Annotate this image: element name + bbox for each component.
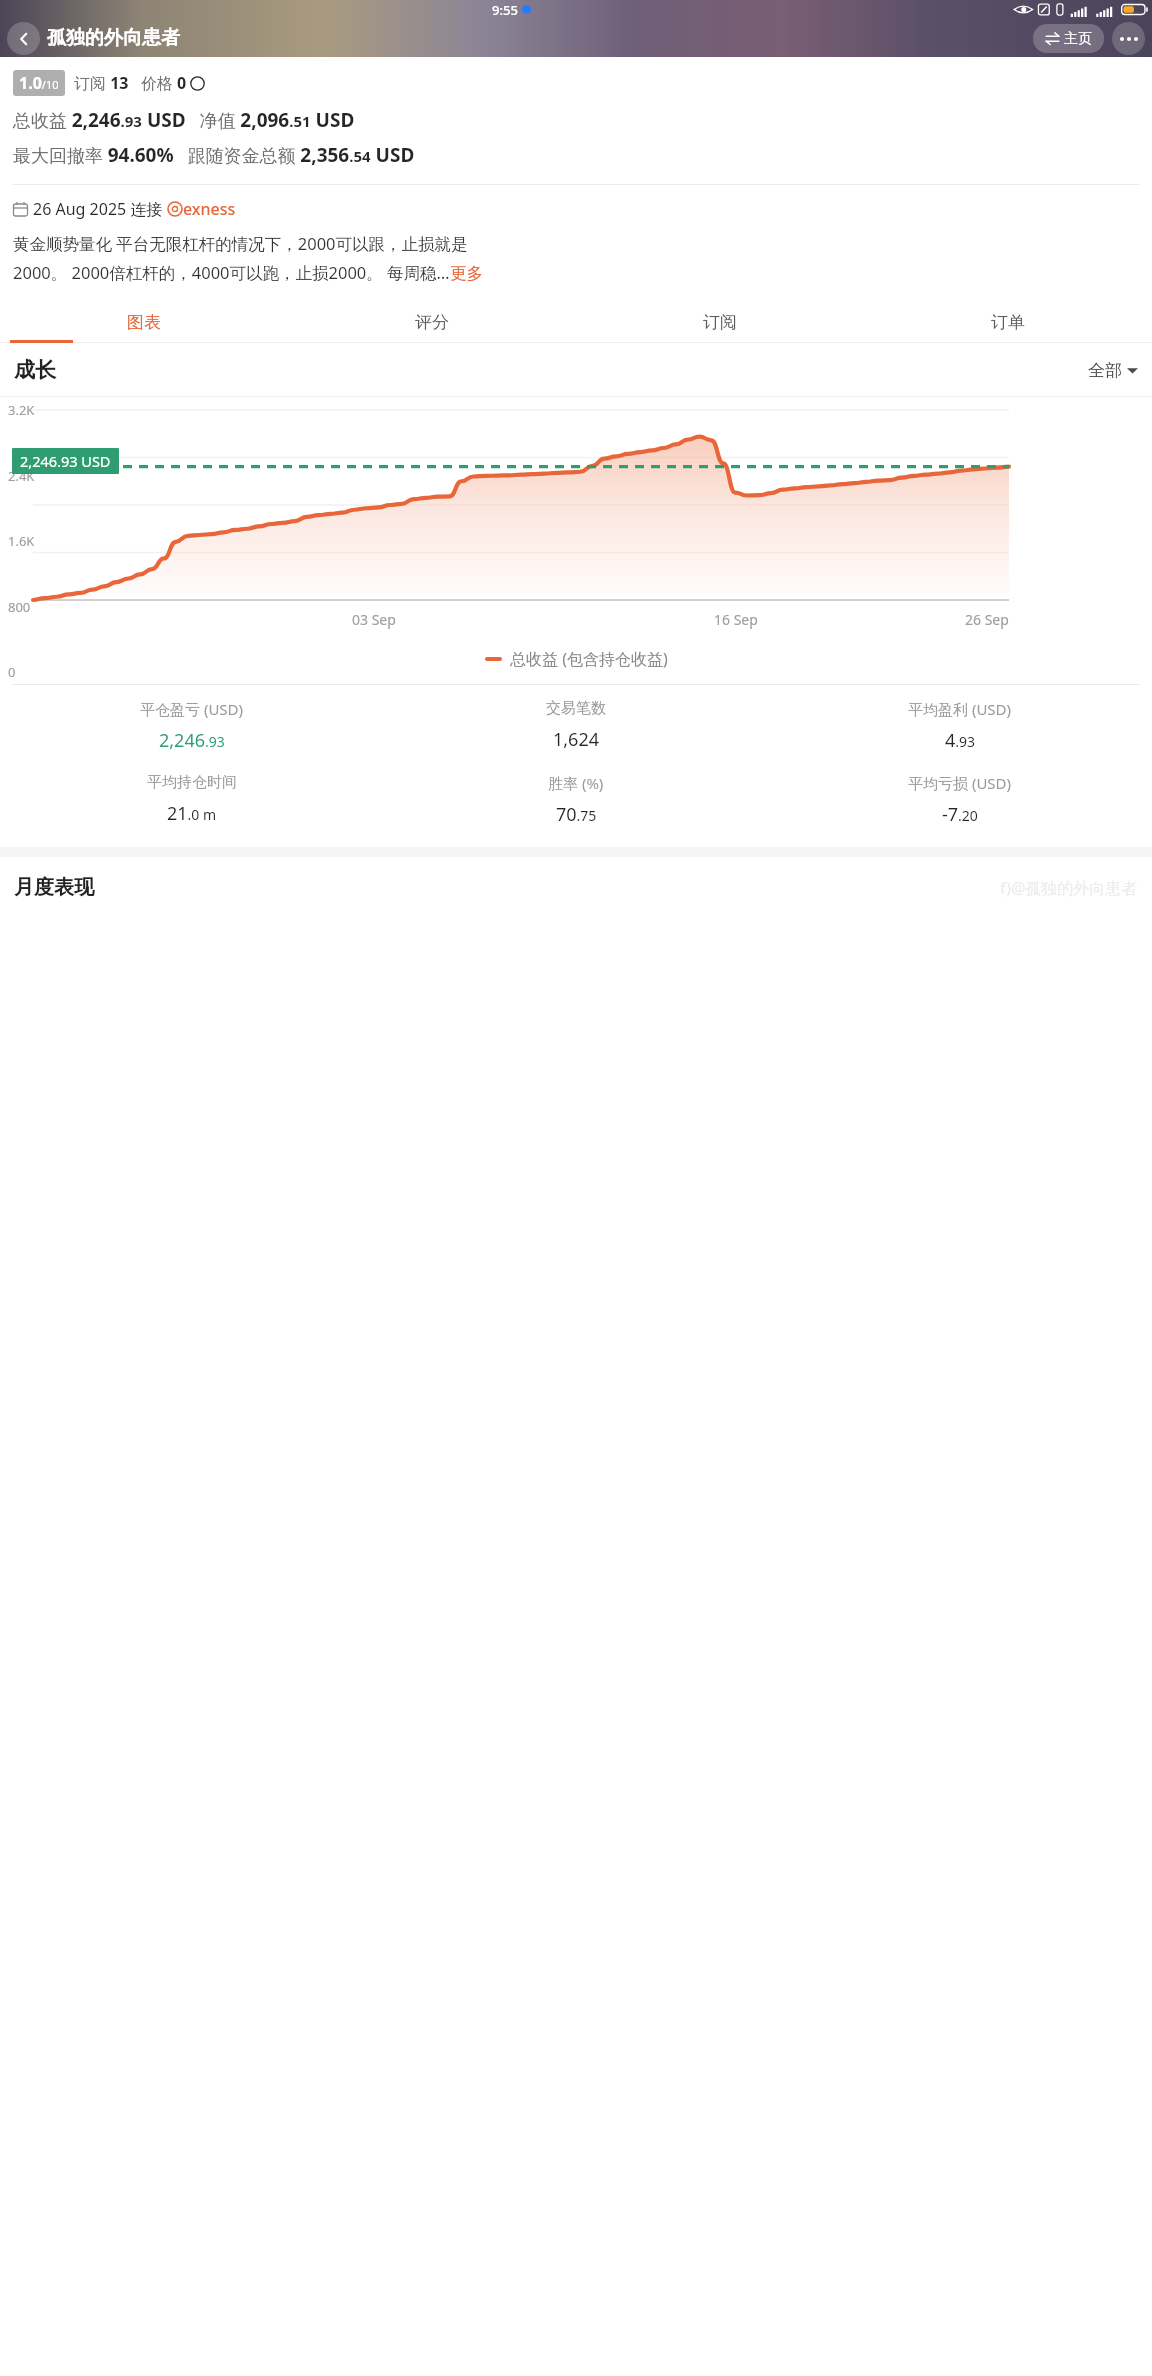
staticText: 全部 — [1088, 360, 1122, 381]
button[interactable]: 更多 — [450, 263, 483, 284]
staticText: 评分 — [415, 312, 449, 333]
staticText: f)@孤独的外向患者 — [1000, 877, 1138, 899]
staticText: 2,246.93 — [159, 728, 225, 753]
button[interactable]: 订阅 — [576, 302, 864, 343]
staticText: 平仓盈亏 (USD) — [140, 699, 244, 719]
staticText: 月度表现 — [14, 875, 94, 900]
button[interactable]: 全部 — [1088, 360, 1138, 381]
staticText: -7.20 — [942, 802, 978, 827]
staticText: 最大回撤率 94.60% 跟随资金总额 2,356.54 USD — [13, 142, 415, 168]
staticText: 800 — [8, 598, 31, 616]
staticText: 03 Sep — [352, 610, 396, 629]
staticText: 70.75 — [556, 802, 597, 827]
staticText: 1.6K — [8, 532, 35, 550]
staticText: 总收益 2,246.93 USD 净值 2,096.51 USD — [13, 107, 355, 133]
staticText: 主页 — [1064, 30, 1092, 48]
staticText: 26 Aug 2025 连接 — [33, 198, 167, 220]
staticText: exness — [183, 198, 236, 220]
staticText: 图表 — [127, 312, 161, 333]
staticText: 16 Sep — [714, 610, 758, 629]
staticText: 孤独的外向患者 — [47, 26, 180, 50]
staticText: 订阅 — [703, 312, 737, 333]
staticText: 2000。 2000倍杠杆的，4000可以跑，止损2000。 每周稳… — [13, 261, 450, 284]
staticText: 2,246.93 USD — [20, 451, 111, 471]
staticText: 26 Sep — [965, 610, 1009, 629]
staticText: 总收益 (包含持仓收益) — [510, 648, 668, 670]
staticText: 2.4K — [8, 467, 35, 485]
staticText: 平均盈利 (USD) — [908, 699, 1012, 719]
staticText: 成长 — [14, 357, 56, 383]
button[interactable]: 主页 — [1033, 24, 1104, 53]
staticText: 1.0/10 — [19, 72, 59, 94]
staticText: 21.0 m — [167, 801, 217, 826]
button[interactable]: 评分 — [288, 302, 576, 343]
staticText: 1,624 — [553, 727, 600, 752]
button[interactable]: 图表 — [0, 302, 288, 343]
staticText: 订单 — [991, 312, 1025, 333]
button[interactable]: More options — [1112, 22, 1145, 55]
button[interactable]: 订单 — [864, 302, 1152, 343]
staticText: 黄金顺势量化 平台无限杠杆的情况下，2000可以跟，止损就是 — [13, 232, 468, 255]
staticText: 3.2K — [8, 401, 35, 419]
staticText: 4.93 — [945, 728, 976, 753]
staticText: 交易笔数 — [546, 699, 606, 718]
staticText: 平均亏损 (USD) — [908, 773, 1012, 793]
button[interactable]: Back — [7, 22, 40, 55]
staticText: 更多 — [450, 263, 483, 284]
staticText: 0 — [8, 663, 16, 681]
staticText: 平均持仓时间 — [147, 773, 237, 792]
staticText: 9:55 — [492, 1, 518, 19]
staticText: 胜率 (%) — [548, 773, 604, 793]
staticText: 订阅 13 价格 0 — [74, 72, 187, 94]
